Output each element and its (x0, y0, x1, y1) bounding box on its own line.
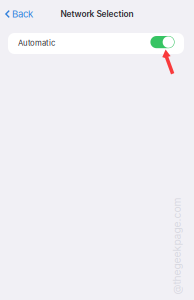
button[interactable]: Back (0, 0, 39, 28)
staticText: Back (12, 8, 33, 20)
button[interactable]: Automatic (8, 33, 184, 54)
staticText: @thegeekpage.com (128, 240, 194, 252)
staticText: Network Selection (60, 9, 133, 19)
staticText: Automatic (18, 38, 55, 48)
